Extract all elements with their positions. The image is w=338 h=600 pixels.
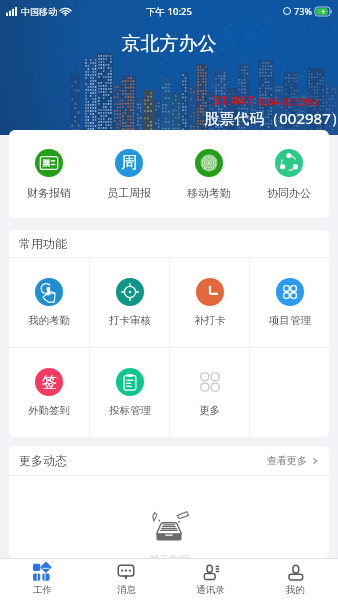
staticText: 我的 <box>286 584 305 596</box>
button[interactable]: 更多 <box>170 348 249 437</box>
button[interactable]: 周 <box>89 130 169 218</box>
button[interactable]: 我的考勤 <box>9 258 89 347</box>
button[interactable]: 票 <box>9 130 89 218</box>
button[interactable]: 消息 <box>84 559 168 600</box>
button[interactable]: 签 <box>9 348 89 437</box>
staticText: 查看更多 <box>267 454 307 467</box>
staticText: 项目管理 <box>269 314 311 327</box>
staticText: 补打卡 <box>194 314 226 327</box>
staticText: 股票代码（002987） <box>204 108 338 128</box>
staticText: 签 <box>42 373 57 392</box>
button[interactable]: 补打卡 <box>170 258 249 347</box>
staticText: 通讯录 <box>196 584 225 596</box>
staticText: 更多动态 <box>19 453 67 468</box>
staticText: 暂无数据 <box>149 553 189 558</box>
button[interactable]: 打卡审核 <box>90 258 169 347</box>
button[interactable]: 工作 <box>0 559 84 600</box>
button[interactable]: 通讯录 <box>168 559 253 600</box>
staticText: 消息 <box>117 584 136 596</box>
staticText: 更多 <box>199 404 220 417</box>
staticText: 投标管理 <box>109 404 151 417</box>
staticText: 财务报销 <box>27 186 71 200</box>
staticText: 周 <box>121 153 137 173</box>
button[interactable]: 投标管理 <box>90 348 169 437</box>
button[interactable]: 移动考勤 <box>169 130 249 218</box>
staticText: 票 <box>42 159 50 168</box>
staticText: 打卡审核 <box>109 314 151 327</box>
button[interactable]: 我的 <box>253 559 338 600</box>
staticText: 外勤签到 <box>28 404 70 417</box>
staticText: 中国移动 <box>21 6 57 17</box>
staticText: 工作 <box>33 584 52 596</box>
staticText: 协同办公 <box>267 186 311 200</box>
staticText: 员工周报 <box>107 186 151 200</box>
staticText: 我的考勤 <box>28 314 70 327</box>
staticText: 73% <box>294 5 312 17</box>
staticText: 移动考勤 <box>187 186 231 200</box>
button[interactable]: 项目管理 <box>250 258 329 347</box>
staticText: 31.44↑ <box>212 91 257 109</box>
staticText: 下午 10:25 <box>146 5 192 18</box>
button[interactable]: 协同办公 <box>249 130 329 218</box>
staticText: 0.04 (0.13%) <box>259 95 318 109</box>
staticText: 常用功能 <box>19 236 67 251</box>
button[interactable]: 更多动态 <box>9 446 329 475</box>
staticText: 京北方办公 <box>0 32 338 56</box>
